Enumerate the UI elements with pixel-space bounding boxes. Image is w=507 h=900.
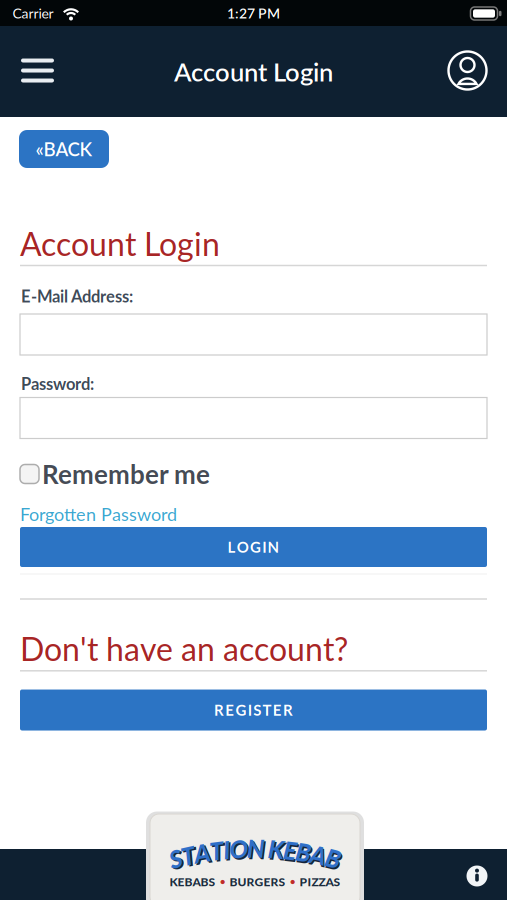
button[interactable]: L — [20, 527, 487, 567]
button[interactable] — [466, 865, 488, 887]
staticText: Carrier — [12, 5, 53, 21]
staticText: Password: — [21, 374, 94, 393]
staticText: B — [296, 837, 312, 867]
staticText: A — [195, 839, 212, 869]
staticText: BURGERS — [229, 874, 285, 889]
staticText — [264, 833, 269, 863]
staticText: E — [225, 701, 234, 719]
staticText — [265, 834, 270, 865]
staticText: R — [214, 701, 224, 719]
staticText: I — [248, 701, 252, 719]
staticText: G — [250, 538, 261, 556]
staticText: O — [231, 835, 250, 865]
button[interactable] — [15, 50, 60, 90]
staticText: T — [209, 835, 223, 866]
staticText: ● — [220, 876, 225, 887]
staticText: R — [283, 701, 293, 719]
staticText: L — [227, 538, 235, 556]
staticText: T — [182, 842, 196, 872]
staticText: PIZZAS — [299, 874, 340, 889]
staticText: Forgotten Password — [20, 503, 177, 525]
staticText: O — [237, 538, 249, 556]
staticText: E — [285, 836, 299, 867]
staticText: T — [181, 840, 195, 870]
staticText: I — [262, 538, 266, 556]
staticText: K — [268, 834, 285, 864]
staticText: T — [262, 701, 271, 719]
staticText: S — [253, 701, 261, 719]
staticText: I — [224, 836, 231, 866]
staticText: Remember me — [42, 458, 210, 490]
button[interactable]: «BACK — [19, 130, 109, 168]
staticText: I — [223, 834, 230, 864]
staticText: A — [310, 839, 327, 870]
staticText: S — [170, 845, 183, 875]
staticText: B — [297, 838, 313, 869]
button[interactable] — [445, 48, 489, 92]
button[interactable]: Forgotten Password — [20, 503, 487, 525]
staticText: 1:27 PM — [227, 5, 280, 21]
staticText: T — [211, 837, 225, 867]
staticText: B — [325, 843, 341, 873]
staticText: B — [327, 844, 343, 875]
staticText: S — [169, 843, 182, 874]
button[interactable]: R — [20, 689, 487, 730]
staticText: N — [268, 538, 280, 556]
staticText: O — [229, 833, 248, 864]
staticText: KEBABS — [169, 874, 215, 889]
staticText: K — [269, 835, 286, 865]
staticText: Account Login — [20, 224, 220, 263]
staticText: N — [248, 834, 266, 865]
staticText: A — [311, 841, 328, 871]
staticText: N — [247, 833, 265, 863]
staticText: «BACK — [35, 138, 92, 160]
staticText: A — [194, 837, 211, 868]
staticText: E — [283, 835, 297, 865]
staticText: ● — [290, 876, 295, 887]
staticText: E — [273, 701, 282, 719]
staticText: E-Mail Address: — [21, 286, 133, 306]
button[interactable]: Remember me — [20, 458, 487, 490]
staticText: Don't have an account? — [20, 629, 348, 668]
staticText: G — [235, 701, 246, 719]
staticText: Account Login — [174, 56, 333, 87]
